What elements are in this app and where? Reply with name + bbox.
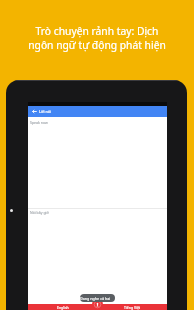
- button[interactable]: Tiếng Việt: [97, 304, 167, 310]
- button[interactable]: Microphone: [92, 299, 103, 310]
- button[interactable]: Back: [28, 106, 167, 117]
- staticText: English: [57, 305, 69, 310]
- staticText: Speak now: [30, 120, 48, 125]
- staticText: Nói bây giờ: [30, 210, 49, 215]
- staticText: Tiếng Việt: [124, 305, 141, 310]
- button[interactable]: Nói bây giờ: [28, 209, 167, 223]
- staticText: Lời nói: [39, 109, 52, 114]
- other: Back: [32, 109, 37, 114]
- button[interactable]: English: [28, 304, 97, 310]
- staticText: Trò chuyện rảnh tay: Dịch ngôn ngữ tự độ…: [0, 24, 194, 52]
- staticText: Đang nghe cả hai ngôn ngữ: [80, 296, 115, 301]
